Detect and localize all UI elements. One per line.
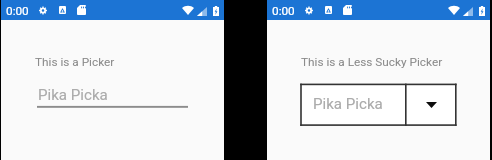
other: SD card bbox=[77, 5, 86, 15]
other: Wi-Fi bbox=[182, 6, 194, 15]
staticText: This is a Picker bbox=[35, 55, 115, 69]
staticText: Pika Picka bbox=[313, 95, 383, 113]
staticText: Pika Picka bbox=[38, 86, 108, 104]
staticText: This is a Less Sucky Picker bbox=[301, 55, 443, 69]
other: Battery charging bbox=[479, 6, 485, 16]
other: Mobile signal bbox=[463, 7, 473, 16]
other: Mobile signal bbox=[197, 7, 207, 16]
other: Wi-Fi bbox=[448, 6, 460, 15]
staticText: 0:00 bbox=[272, 4, 295, 18]
button[interactable]: Pika Picka bbox=[37, 82, 188, 108]
other: Developer options bbox=[325, 6, 332, 14]
button[interactable]: Pika Picka bbox=[300, 84, 457, 126]
other: Open picker bbox=[426, 102, 437, 108]
other: Battery charging bbox=[213, 6, 219, 16]
other: SD card bbox=[343, 5, 352, 15]
other: Settings bbox=[39, 6, 47, 15]
staticText: 0:00 bbox=[6, 4, 29, 18]
other: Developer options bbox=[59, 6, 66, 14]
other: Settings bbox=[305, 6, 313, 15]
